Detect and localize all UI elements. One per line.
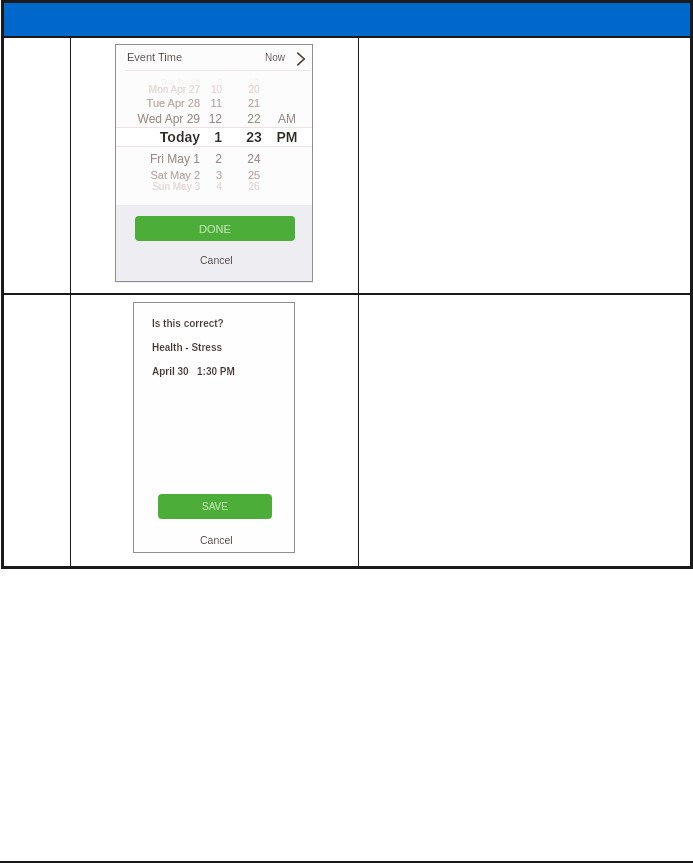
staticText: Mon Apr 27 [40, 84, 200, 95]
other: Now [297, 52, 305, 66]
staticText: 4 [200, 181, 222, 192]
staticText: 20 [238, 84, 270, 95]
staticText: 24 [238, 152, 270, 165]
staticText: 1 [200, 129, 222, 145]
staticText: 25 [238, 169, 270, 181]
button[interactable]: Today [115, 128, 313, 146]
button[interactable]: Event Time [115, 44, 313, 70]
button[interactable]: SAVE [158, 494, 272, 519]
staticText: Today [40, 129, 200, 145]
button[interactable]: DONE [135, 216, 295, 241]
staticText: 2 [200, 152, 222, 165]
staticText: 11 [200, 97, 222, 109]
staticText: Event Time [127, 51, 183, 63]
button[interactable]: Sat May 2 [115, 166, 313, 184]
staticText: Fri May 1 [40, 152, 200, 165]
staticText: Now [265, 52, 286, 63]
button[interactable]: Sun Apr 26 [115, 72, 313, 90]
staticText: Cancel [200, 254, 233, 266]
staticText: 3 [200, 169, 222, 181]
staticText: Tue Apr 28 [40, 97, 200, 109]
button[interactable]: Mon Apr 27 [115, 80, 313, 98]
staticText: 22 [238, 112, 270, 125]
staticText: Sun Apr 26 [40, 77, 200, 86]
staticText: 10 [200, 84, 222, 95]
staticText: PM [271, 129, 303, 145]
staticText: Is this correct? [152, 318, 224, 329]
staticText: 12 [200, 112, 222, 125]
staticText: Health - Stress [152, 342, 223, 353]
button[interactable]: Cancel [197, 253, 236, 267]
button[interactable]: Sun May 3 [115, 177, 313, 195]
staticText: 9 [200, 77, 222, 86]
staticText: Sun May 3 [40, 181, 200, 192]
staticText: Wed Apr 29 [40, 112, 200, 125]
staticText: DONE [199, 223, 231, 235]
staticText: 21 [238, 97, 270, 109]
button[interactable]: Fri May 1 [115, 149, 313, 167]
staticText: AM [271, 112, 303, 125]
staticText: 26 [238, 181, 270, 192]
staticText: SAVE [202, 501, 228, 512]
button[interactable]: Tue Apr 28 [115, 94, 313, 112]
staticText: Cancel [200, 534, 233, 546]
staticText: 23 [238, 129, 270, 145]
staticText: 19 [238, 77, 270, 86]
staticText: Sat May 2 [40, 169, 200, 181]
staticText: April 30 1:30 PM [152, 366, 235, 377]
button[interactable]: Cancel [197, 533, 236, 547]
button[interactable]: Wed Apr 29 [115, 109, 313, 127]
